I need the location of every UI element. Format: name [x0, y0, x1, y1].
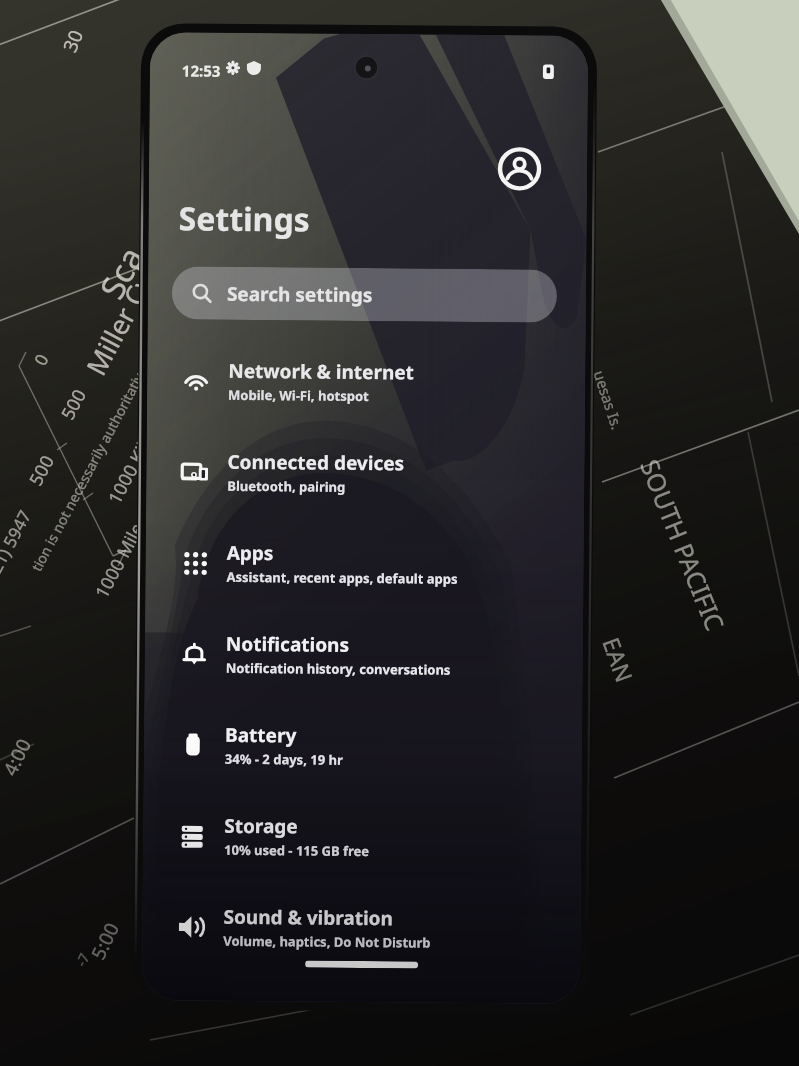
button[interactable]: Storage	[143, 789, 582, 884]
staticText: 5:00	[85, 918, 125, 964]
staticText: 30	[57, 26, 89, 56]
button[interactable]: Battery	[144, 698, 582, 793]
button[interactable]: Search settings	[172, 266, 557, 323]
staticText: Apps	[227, 540, 274, 566]
staticText: Sound & vibration	[223, 904, 394, 931]
staticText: Storage	[224, 813, 298, 839]
button[interactable]: Network & internet	[147, 334, 586, 429]
staticText: Connected devices	[227, 449, 405, 476]
staticText: Settings	[178, 196, 311, 242]
staticText: Assistant, recent apps, default apps	[226, 568, 458, 588]
staticText: Search settings	[227, 281, 373, 308]
staticText: SOUTH PACIFIC	[633, 454, 733, 636]
button[interactable]: Apps	[145, 516, 584, 611]
staticText: 500	[55, 385, 92, 424]
staticText: 1000 Miles	[89, 510, 154, 603]
staticText: 34% - 2 days, 19 hr	[225, 750, 343, 769]
staticText: Notification history, conversations	[226, 659, 451, 679]
staticText: Battery	[225, 722, 297, 748]
button[interactable]: Connected devices	[146, 425, 585, 520]
staticText: 21) 5947	[0, 506, 36, 577]
staticText: 4:00	[0, 734, 37, 780]
staticText: 10% used - 115 GB free	[224, 841, 370, 860]
staticText: Bluetooth, pairing	[227, 477, 346, 496]
staticText: 1000 Kilom	[102, 413, 169, 508]
staticText: Sca	[89, 238, 154, 306]
staticText: Miller Cylin	[77, 240, 176, 381]
staticText: Notifications	[226, 631, 350, 658]
staticText: tion is not necessarily authoritativ	[27, 369, 148, 574]
staticText: Volume, haptics, Do Not Disturb	[223, 932, 431, 952]
staticText: EAN	[596, 633, 641, 686]
staticText: Mobile, Wi-Fi, hotspot	[228, 386, 369, 405]
button[interactable]: Sound & vibration	[142, 880, 581, 975]
button[interactable]: Account	[493, 142, 545, 195]
staticText: 500	[23, 451, 60, 490]
button[interactable]: Notifications	[144, 607, 583, 702]
staticText: -7	[71, 949, 94, 969]
staticText: 0	[28, 350, 53, 369]
staticText: Network & internet	[228, 358, 414, 385]
staticText: uesas Is.	[590, 368, 627, 432]
staticText: 12:53	[182, 60, 221, 81]
